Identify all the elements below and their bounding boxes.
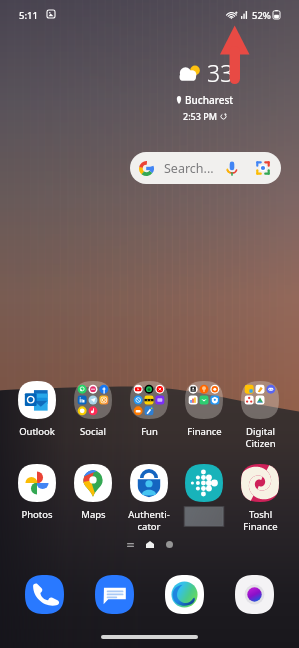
button[interactable]: Messages xyxy=(95,575,134,614)
button[interactable]: Toshl Finance xyxy=(232,464,288,533)
button[interactable]: Edge browser xyxy=(165,575,204,614)
button[interactable]: Finance xyxy=(176,381,232,438)
staticText: Finance xyxy=(187,425,222,438)
staticText: Outlook xyxy=(19,425,55,438)
button[interactable]: Outlook xyxy=(9,381,65,438)
button[interactable]: Fun xyxy=(121,381,177,438)
button[interactable]: 33 xyxy=(150,58,260,122)
staticText: 2:53 PM xyxy=(183,110,217,122)
staticText: Bucharest xyxy=(185,93,234,107)
staticText: Social xyxy=(80,425,106,438)
button[interactable]: Google search xyxy=(130,152,281,184)
staticText: Fun xyxy=(141,425,158,438)
staticText: Maps xyxy=(81,508,106,521)
staticText: 5:11 xyxy=(19,9,38,22)
button[interactable]: Maps xyxy=(65,464,121,521)
button[interactable]: Photos xyxy=(9,464,65,521)
button[interactable]: Digital Citizen xyxy=(232,381,288,450)
button[interactable]: Phone xyxy=(25,575,64,614)
button[interactable]: Authenti- cator xyxy=(121,464,177,533)
staticText: Photos xyxy=(21,508,53,521)
staticText: 33 xyxy=(207,57,234,88)
staticText: Search... xyxy=(164,160,214,177)
staticText: Digital Citizen xyxy=(245,425,276,450)
button[interactable]: App xyxy=(176,464,232,528)
button[interactable]: Social xyxy=(65,381,121,438)
button[interactable]: Assistant xyxy=(235,575,274,614)
staticText: Toshl Finance xyxy=(243,508,278,533)
staticText: Authenti- cator xyxy=(128,508,170,533)
staticText: 52% xyxy=(252,9,271,22)
